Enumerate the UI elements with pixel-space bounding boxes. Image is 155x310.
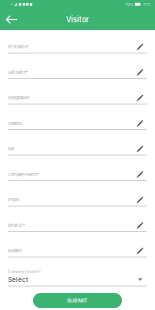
staticText: First name* <box>8 44 29 49</box>
staticText: Mobile* <box>8 248 22 253</box>
staticText: Company Location* <box>8 269 41 274</box>
staticText: Email ID* <box>8 223 25 228</box>
staticText: Company Name* <box>8 172 39 177</box>
staticText: Designation* <box>8 95 30 100</box>
staticText: Visitor <box>66 15 89 24</box>
button[interactable]: Email ID* <box>8 208 147 234</box>
button[interactable]: First name* <box>8 30 147 55</box>
staticText: Fax <box>8 146 14 151</box>
staticText: Select <box>8 276 28 284</box>
staticText: 72% <box>125 2 133 7</box>
button[interactable]: Phone <box>8 183 147 208</box>
button[interactable]: Last name* <box>8 55 147 81</box>
staticText: Last name* <box>8 70 28 75</box>
staticText: Phone <box>8 197 19 202</box>
button[interactable]: Designation* <box>8 81 147 106</box>
staticText: SUBMIT <box>67 297 88 304</box>
button[interactable]: SUBMIT <box>33 293 122 308</box>
button[interactable]: Fax <box>8 132 147 157</box>
staticText: Address <box>8 121 22 126</box>
staticText: 7:11 <box>143 2 150 7</box>
button[interactable]: Company Location* <box>8 259 147 287</box>
button[interactable]: Company Name* <box>8 157 147 183</box>
button[interactable]: Back <box>1 9 21 29</box>
button[interactable]: Address <box>8 106 147 132</box>
button[interactable]: Mobile* <box>8 234 147 259</box>
